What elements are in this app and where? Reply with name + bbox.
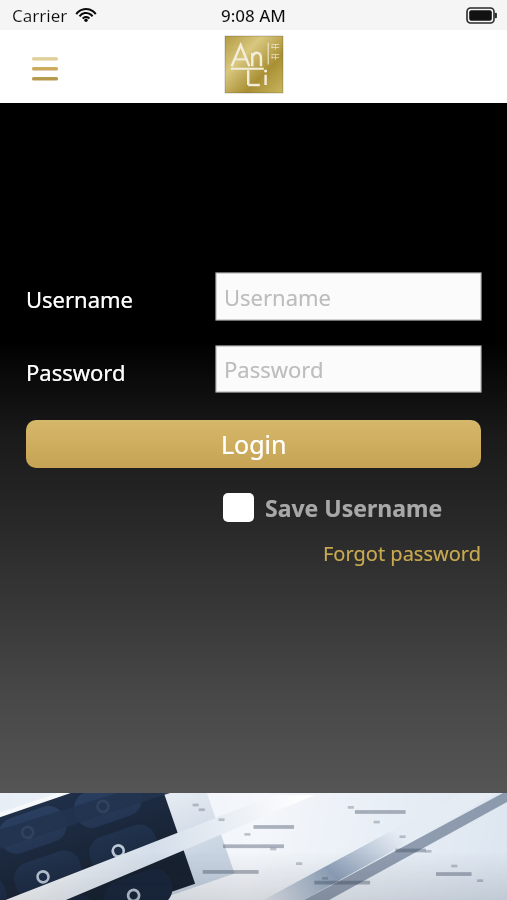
staticText: Password [26,357,126,387]
staticText: 9:08 AM [221,4,286,27]
staticText: Username [224,282,332,312]
button[interactable]: Menu [22,44,68,90]
button[interactable]: Login [26,420,481,468]
staticText: Carrier [12,4,68,27]
button[interactable]: An Li logo [225,36,283,93]
button[interactable]: Save Username [216,489,443,525]
button[interactable]: Forgot password [290,538,481,568]
staticText: Username [26,284,134,314]
staticText: Login [221,427,287,461]
staticText: Password [224,354,324,384]
button[interactable]: Password [216,346,481,392]
staticText: Save Username [265,492,443,523]
button[interactable]: Username [216,273,481,320]
staticText: Forgot password [322,540,481,567]
